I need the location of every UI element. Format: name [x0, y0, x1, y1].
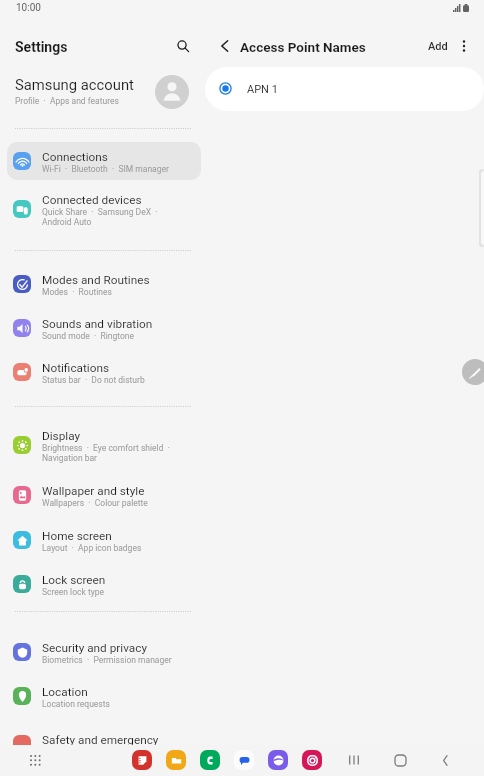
button[interactable]: app1	[132, 750, 152, 770]
staticText: Home screen	[42, 529, 112, 543]
staticText: Brightness · Eye comfort shield · Naviga…	[42, 443, 175, 463]
staticText: Location requests	[42, 699, 110, 709]
staticText: Modes and Routines	[42, 273, 150, 287]
staticText: Modes · Routines	[42, 287, 112, 297]
staticText: Access Point Names	[240, 39, 366, 55]
button[interactable]	[7, 353, 201, 391]
staticText: Screen lock type	[42, 587, 104, 597]
button[interactable]	[7, 265, 201, 303]
staticText: Wi-Fi · Bluetooth · SIM manager	[42, 164, 169, 174]
button[interactable]: Add	[422, 34, 454, 58]
staticText: Sound mode · Ringtone	[42, 331, 134, 341]
staticText: Safety and emergency	[42, 733, 159, 747]
button[interactable]	[7, 190, 201, 228]
button[interactable]: app2	[166, 750, 186, 770]
button[interactable]: Apps	[24, 749, 46, 771]
button[interactable]: app5	[268, 750, 288, 770]
staticText: Medical info · Emergency SOS	[42, 747, 160, 757]
staticText: Lock screen	[42, 573, 106, 587]
button[interactable]	[7, 142, 201, 180]
button[interactable]	[7, 309, 201, 347]
button[interactable]: Back	[211, 32, 238, 59]
button[interactable]: app6	[302, 750, 322, 770]
button[interactable]: Back	[435, 750, 455, 770]
button[interactable]: Edit	[462, 359, 484, 385]
staticText: Samsung account	[15, 76, 134, 93]
button[interactable]	[7, 565, 201, 603]
staticText: Layout · App icon badges	[42, 543, 142, 553]
staticText: Security and privacy	[42, 641, 147, 655]
button[interactable]	[7, 725, 201, 763]
button[interactable]: APN 1	[205, 67, 484, 111]
staticText: Connections	[42, 150, 108, 164]
staticText: Wallpapers · Colour palette	[42, 498, 148, 508]
staticText: Settings	[15, 39, 68, 55]
button[interactable]: Samsung account	[0, 70, 205, 114]
staticText: Status bar · Do not disturb	[42, 375, 145, 385]
button[interactable]	[7, 426, 201, 464]
staticText: 10:00	[16, 2, 41, 14]
button[interactable]: app4	[234, 750, 254, 770]
staticText: Quick Share · Samsung DeX · Android Auto	[42, 207, 162, 227]
button[interactable]	[7, 521, 201, 559]
staticText: Notifications	[42, 361, 110, 375]
button[interactable]: More options	[451, 33, 476, 58]
button[interactable]	[7, 633, 201, 671]
staticText: Biometrics · Permission manager	[42, 655, 172, 665]
staticText: Display	[42, 429, 81, 443]
staticText: Connected devices	[42, 193, 142, 207]
button[interactable]: app3	[200, 750, 220, 770]
button[interactable]: Search	[169, 33, 195, 59]
staticText: Sounds and vibration	[42, 317, 153, 331]
staticText: Wallpaper and style	[42, 484, 145, 498]
button[interactable]	[7, 476, 201, 514]
button[interactable]	[7, 677, 201, 715]
staticText: Add	[428, 40, 448, 53]
staticText: Profile · Apps and features	[15, 96, 119, 106]
staticText: Location	[42, 685, 88, 699]
button[interactable]: Recents	[344, 750, 364, 770]
button[interactable]: Home	[390, 750, 410, 770]
staticText: APN 1	[247, 83, 278, 96]
